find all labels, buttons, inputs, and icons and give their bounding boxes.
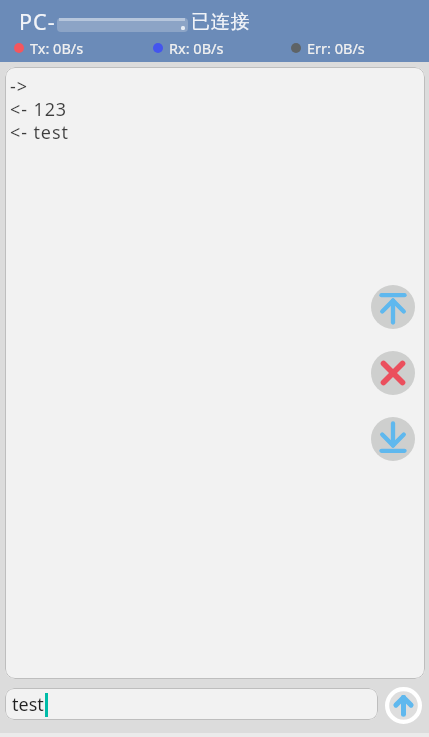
staticText: Tx: 0B/s — [30, 38, 84, 58]
button[interactable]: Scroll to bottom — [371, 417, 415, 461]
staticText: <- 123 — [10, 97, 68, 120]
staticText: Err: 0B/s — [307, 38, 365, 58]
staticText: PC- — [19, 7, 56, 36]
staticText: <- test — [10, 120, 69, 143]
staticText: -> — [10, 74, 28, 97]
button[interactable]: Send — [385, 687, 422, 724]
staticText: 已连接 — [191, 10, 251, 34]
button[interactable]: test — [5, 688, 378, 720]
button[interactable]: Clear — [371, 351, 415, 395]
staticText: test — [12, 692, 44, 717]
button[interactable]: Scroll to top — [371, 285, 415, 329]
staticText: Rx: 0B/s — [169, 38, 224, 58]
